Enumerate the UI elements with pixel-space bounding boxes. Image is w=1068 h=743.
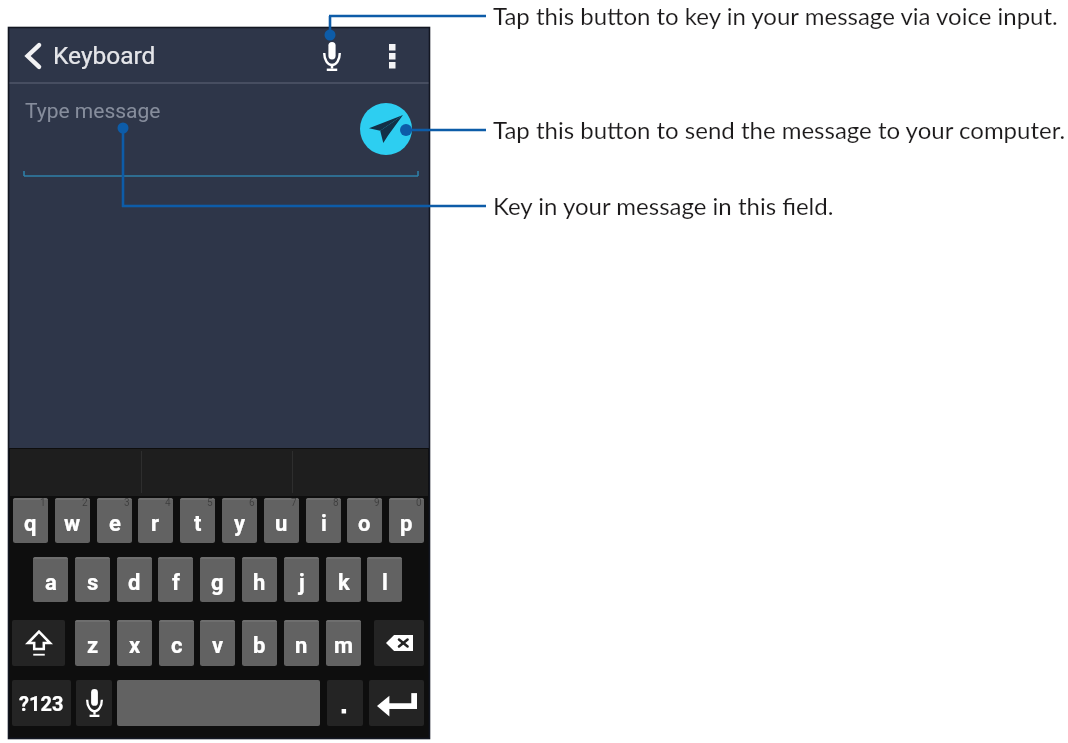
staticText: t: [194, 511, 202, 537]
staticText: 7: [291, 498, 297, 509]
staticText: 6: [249, 498, 255, 509]
button[interactable]: q: [13, 498, 48, 543]
staticText: 8: [333, 498, 339, 509]
staticText: i: [321, 511, 327, 537]
button[interactable]: v: [200, 620, 235, 666]
staticText: ?123: [19, 692, 64, 715]
staticText: 3: [124, 498, 130, 509]
button[interactable]: h: [242, 557, 277, 602]
button[interactable]: f: [158, 557, 193, 602]
staticText: 1: [40, 498, 46, 509]
staticText: n: [295, 633, 308, 659]
button[interactable]: w: [55, 498, 90, 543]
staticText: x: [129, 633, 141, 659]
button[interactable]: o: [347, 498, 382, 543]
button[interactable]: y: [222, 498, 257, 543]
button[interactable]: Shift: [12, 620, 65, 666]
staticText: e: [109, 511, 121, 537]
staticText: 0: [416, 498, 422, 509]
button[interactable]: g: [200, 557, 235, 602]
staticText: h: [253, 570, 266, 596]
staticText: Type message: [25, 99, 161, 124]
button[interactable]: More options: [370, 33, 414, 79]
staticText: g: [211, 570, 224, 596]
staticText: v: [212, 633, 224, 659]
staticText: Tap this button to send the message to y…: [493, 115, 1066, 144]
button[interactable]: Backspace: [374, 620, 424, 666]
button[interactable]: x: [117, 620, 152, 666]
button[interactable]: e: [97, 498, 132, 543]
button[interactable]: t: [180, 498, 215, 543]
staticText: y: [234, 511, 246, 537]
button[interactable]: b: [242, 620, 277, 666]
button[interactable]: Send message: [360, 103, 412, 155]
staticText: d: [128, 570, 141, 596]
staticText: f: [172, 570, 180, 596]
staticText: p: [400, 511, 413, 537]
button[interactable]: k: [326, 557, 361, 602]
button[interactable]: d: [117, 557, 152, 602]
staticText: a: [45, 570, 57, 596]
button[interactable]: r: [138, 498, 173, 543]
button[interactable]: s: [75, 557, 110, 602]
button[interactable]: Period: [327, 680, 363, 726]
staticText: 5: [207, 498, 213, 509]
button[interactable]: m: [326, 620, 361, 666]
staticText: 2: [82, 498, 88, 509]
staticText: z: [87, 633, 99, 659]
staticText: w: [64, 511, 81, 537]
button[interactable]: j: [284, 557, 319, 602]
staticText: o: [358, 511, 371, 537]
button[interactable]: Voice input: [309, 33, 355, 79]
staticText: Keyboard: [53, 41, 156, 70]
staticText: b: [253, 633, 266, 659]
staticText: l: [382, 570, 388, 596]
staticText: c: [171, 633, 183, 659]
button[interactable]: Enter: [369, 680, 424, 726]
button[interactable]: Voice input: [76, 680, 112, 726]
staticText: k: [338, 570, 350, 596]
button[interactable]: a: [33, 557, 68, 602]
button[interactable]: z: [75, 620, 110, 666]
button[interactable]: u: [264, 498, 299, 543]
staticText: Key in your message in this field.: [493, 191, 834, 220]
button[interactable]: n: [284, 620, 319, 666]
staticText: m: [334, 633, 354, 659]
button[interactable]: Keyboard: [17, 34, 177, 78]
staticText: j: [299, 570, 305, 596]
staticText: s: [87, 570, 99, 596]
button[interactable]: Symbols: [12, 680, 71, 726]
staticText: u: [275, 511, 288, 537]
button[interactable]: i: [306, 498, 341, 543]
staticText: 9: [374, 498, 380, 509]
staticText: r: [151, 511, 160, 537]
staticText: 4: [165, 498, 171, 509]
staticText: Tap this button to key in your message v…: [493, 1, 1058, 30]
button[interactable]: l: [367, 557, 402, 602]
staticText: q: [24, 511, 37, 537]
button[interactable]: c: [159, 620, 194, 666]
button[interactable]: p: [389, 498, 424, 543]
